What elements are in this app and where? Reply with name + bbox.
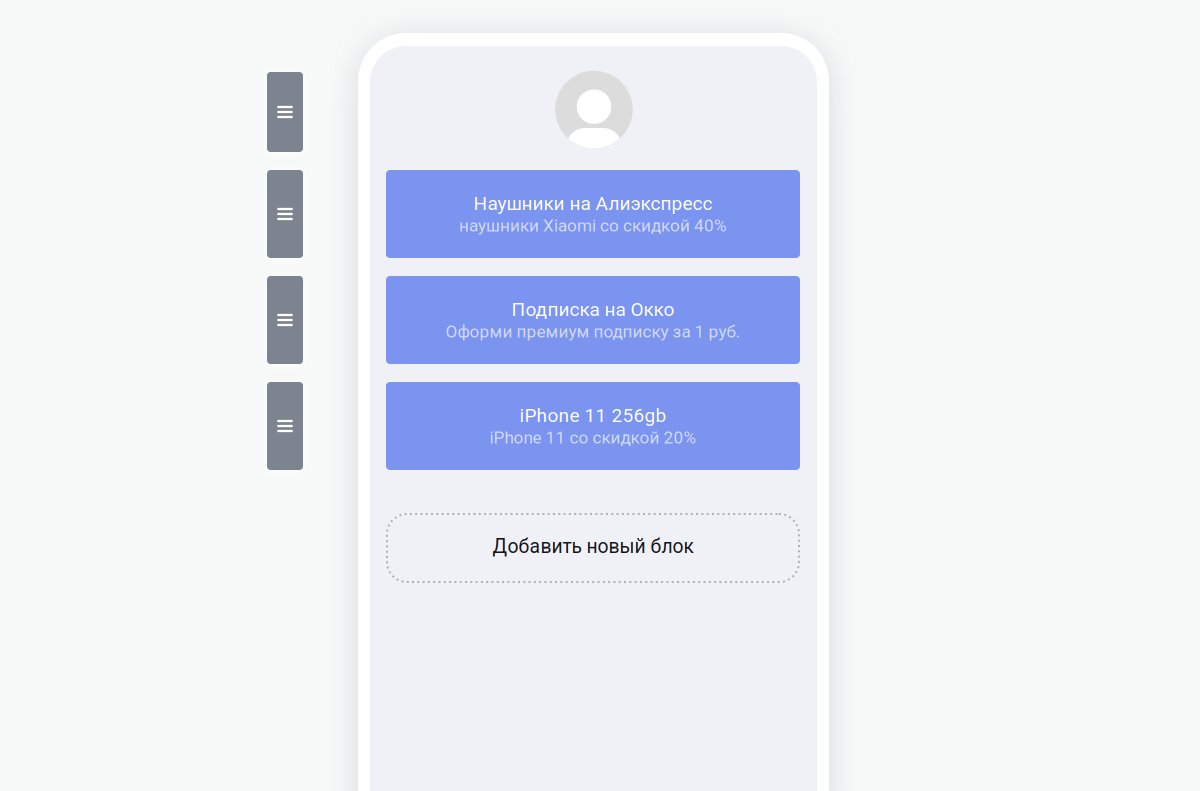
staticText: iPhone 11 256gb bbox=[519, 404, 666, 427]
button[interactable]: Reorder block bbox=[267, 72, 303, 152]
button[interactable]: Подписка на Окко bbox=[386, 276, 800, 364]
button[interactable]: Reorder block bbox=[267, 276, 303, 364]
button[interactable]: Наушники на Алиэкспресс bbox=[386, 170, 800, 258]
staticText: iPhone 11 со скидкой 20% bbox=[489, 428, 696, 448]
button[interactable]: Reorder block bbox=[267, 382, 303, 470]
staticText: наушники Xiaomi со скидкой 40% bbox=[459, 216, 727, 236]
button[interactable]: Reorder block bbox=[267, 170, 303, 258]
staticText: Добавить новый блок bbox=[492, 535, 693, 558]
button[interactable]: iPhone 11 256gb bbox=[386, 382, 800, 470]
button[interactable]: Добавить новый блок bbox=[386, 513, 800, 583]
staticText: Наушники на Алиэкспресс bbox=[473, 192, 712, 215]
staticText: Оформи премиум подписку за 1 руб. bbox=[445, 322, 740, 342]
staticText: Подписка на Окко bbox=[511, 298, 674, 321]
